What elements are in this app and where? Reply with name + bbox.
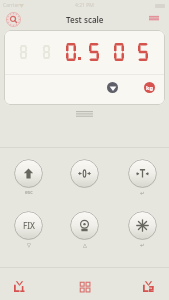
button[interactable]: Zero: [70, 159, 99, 188]
staticText: Test scale: [66, 14, 104, 25]
staticText: ▽: [27, 242, 31, 248]
button[interactable]: All functions: [67, 270, 101, 300]
button[interactable]: △: [70, 211, 99, 240]
button[interactable]: Scale 1: [2, 270, 36, 300]
button[interactable]: ↵: [128, 211, 157, 240]
staticText: FIX: [23, 220, 35, 231]
staticText: ↵: [140, 242, 145, 248]
staticText: kg: [146, 84, 153, 91]
button[interactable]: Stable indicator: [107, 82, 118, 93]
staticText: ↵: [140, 190, 145, 196]
staticText: △: [83, 242, 87, 248]
staticText: Carrier: [3, 2, 20, 9]
button[interactable]: App logo: [6, 12, 21, 27]
button[interactable]: Unit kilograms: [144, 82, 155, 93]
button[interactable]: ↵: [128, 159, 157, 188]
staticText: 4:21 PM: [75, 2, 94, 9]
staticText: esc: [25, 189, 33, 196]
button[interactable]: ▽: [14, 211, 43, 240]
button[interactable]: Menu: [148, 14, 160, 22]
button[interactable]: esc: [14, 159, 43, 188]
button[interactable]: Scale 2: [131, 270, 165, 300]
